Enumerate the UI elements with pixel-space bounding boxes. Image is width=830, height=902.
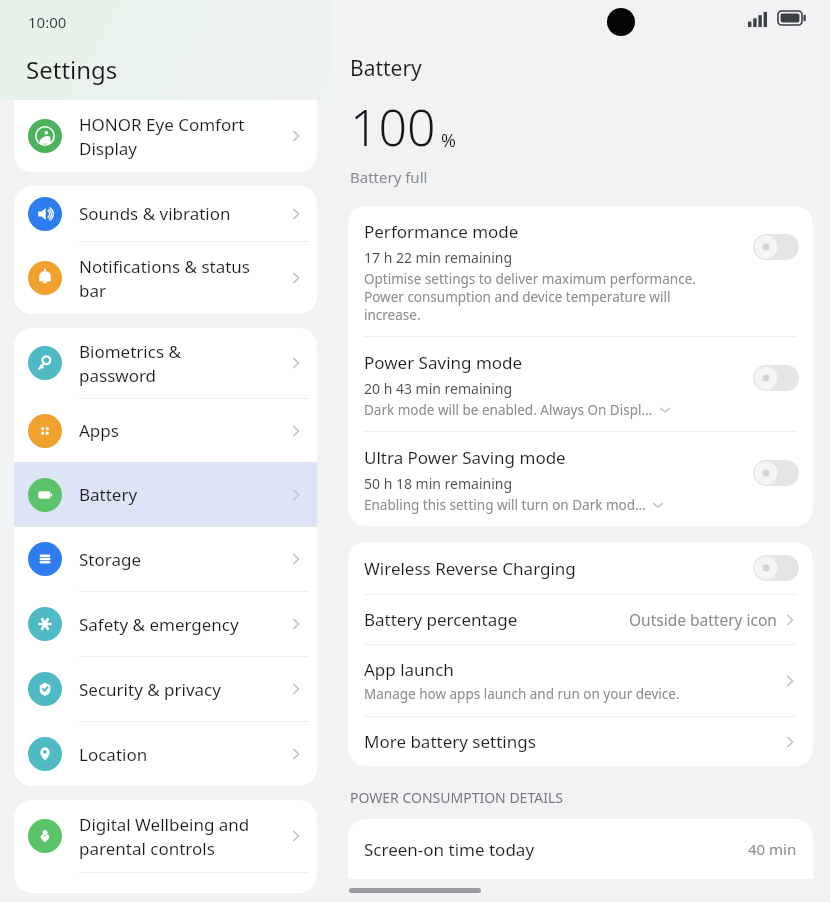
staticText: Power Saving mode [364, 351, 523, 374]
staticText: More battery settings [364, 730, 536, 753]
staticText: Storage [79, 548, 287, 571]
button[interactable]: Storage [14, 527, 317, 592]
button[interactable]: Toggle [753, 365, 799, 391]
staticText: Battery percentage [364, 608, 518, 631]
button[interactable]: Apps [14, 399, 317, 462]
staticText: Security & privacy [79, 678, 287, 701]
staticText: Enabling this setting will turn on Dark … [364, 496, 646, 514]
button[interactable]: Security & privacy [14, 657, 317, 722]
staticText: POWER CONSUMPTION DETAILS [350, 788, 563, 807]
staticText: App launch [364, 658, 454, 681]
staticText: Safety & emergency [79, 613, 287, 636]
staticText: Settings [26, 53, 118, 86]
button[interactable]: Sounds & vibration [14, 186, 317, 242]
staticText: Manage how apps launch and run on your d… [364, 685, 680, 703]
staticText: Battery [79, 483, 287, 506]
button[interactable]: Digital Wellbeing and parental controls [14, 800, 317, 872]
staticText: Performance mode [364, 220, 519, 243]
button[interactable]: Performance mode [348, 206, 813, 337]
staticText: Ultra Power Saving mode [364, 446, 566, 469]
other: Status icons [748, 9, 808, 27]
staticText: % [441, 128, 456, 153]
staticText: Battery [350, 54, 422, 83]
staticText: Sounds & vibration [79, 202, 287, 225]
button[interactable]: Safety & emergency [14, 592, 317, 657]
button[interactable]: Ultra Power Saving mode [348, 432, 813, 526]
staticText: 50 h 18 min remaining [364, 474, 513, 493]
staticText: Digital Wellbeing and parental controls [79, 813, 287, 860]
staticText: Optimise settings to deliver maximum per… [364, 270, 724, 324]
staticText: 100 [350, 93, 436, 161]
button[interactable]: Battery [14, 462, 317, 527]
staticText: 20 h 43 min remaining [364, 379, 513, 398]
button[interactable]: Power Saving mode [348, 337, 813, 432]
button[interactable]: Screen-on time today [348, 819, 813, 879]
button[interactable]: Notifications & status bar [14, 242, 317, 314]
staticText: 40 min [748, 839, 797, 859]
staticText: Screen-on time today [364, 838, 748, 861]
button[interactable]: Location [14, 722, 317, 786]
staticText: 17 h 22 min remaining [364, 248, 513, 267]
staticText: Apps [79, 419, 287, 442]
staticText: Location [79, 743, 287, 766]
staticText: HONOR Eye Comfort Display [79, 113, 287, 160]
button[interactable]: Battery percentage [348, 595, 813, 645]
staticText: Wireless Reverse Charging [364, 557, 576, 580]
button[interactable]: Biometrics & password [14, 328, 317, 398]
button[interactable]: Toggle [753, 234, 799, 260]
staticText: Dark mode will be enabled. Always On Dis… [364, 401, 653, 419]
button[interactable]: Toggle [753, 460, 799, 486]
staticText: Notifications & status bar [79, 255, 287, 302]
button[interactable]: App launch [348, 645, 813, 717]
button[interactable]: Wireless Reverse Charging [348, 542, 813, 595]
staticText: Outside battery icon [629, 609, 777, 630]
staticText: Battery full [350, 167, 428, 187]
staticText: 10:00 [28, 12, 67, 32]
button[interactable]: Toggle [753, 555, 799, 581]
button[interactable]: More battery settings [348, 717, 813, 766]
staticText: Biometrics & password [79, 340, 287, 387]
